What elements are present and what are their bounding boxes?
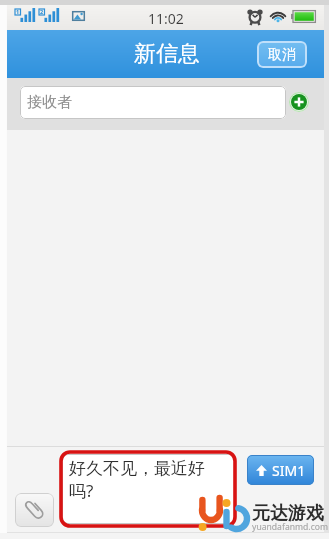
staticText: 1 [16,8,20,15]
button[interactable]: 好久不见，最近好吗? [62,454,235,524]
staticText: 接收者 [27,93,72,112]
staticText: 11:02 [148,9,184,28]
staticText: 新信息 [134,40,200,68]
staticText: 2 [40,8,44,15]
button[interactable]: SIM1 [247,455,314,485]
staticText: 元达游戏 [252,502,324,525]
button[interactable]: Add recipient [289,92,309,112]
staticText: 好久不见，最近好吗? [69,458,213,502]
staticText: yuandafanmd.com [252,521,329,533]
button[interactable]: Attach [15,493,54,527]
button[interactable]: 接收者 [20,86,286,119]
button[interactable]: 取消 [257,41,307,68]
staticText: SIM1 [272,461,306,480]
staticText: 取消 [268,46,296,64]
